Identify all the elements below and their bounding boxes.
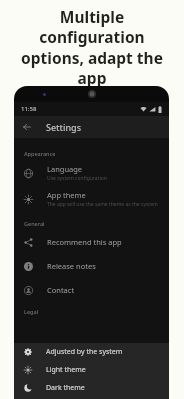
staticText: to your needs [39,88,146,109]
staticText: The app will use the same theme as the s… [47,201,158,208]
button[interactable]: Language [14,160,169,186]
button[interactable]: Adjusted by the system [14,343,169,361]
button[interactable]: Recommend this app [14,230,169,254]
button[interactable]: Back [18,118,36,136]
staticText: Multiple configuration [7,6,177,47]
button[interactable]: App theme [14,186,169,212]
staticText: Light theme [46,365,86,375]
staticText: options, adapt the app [7,47,177,88]
button[interactable]: Light theme [14,361,169,379]
button[interactable]: Contact [14,278,169,302]
staticText: Use system configuration [47,175,107,182]
staticText: 11:58 [21,105,37,113]
staticText: Dark theme [46,383,85,393]
staticText: Release notes [47,261,96,271]
staticText: Settings [46,121,82,133]
staticText: App theme [47,190,86,200]
staticText: Legal [24,308,39,315]
staticText: Appearance [24,150,56,157]
staticText: General [24,220,45,227]
staticText: Language [47,164,83,174]
staticText: Adjusted by the system [46,347,123,357]
button[interactable]: Release notes [14,254,169,278]
staticText: Contact [47,285,75,295]
staticText: Recommend this app [47,237,122,247]
button[interactable]: Dark theme [14,379,169,397]
